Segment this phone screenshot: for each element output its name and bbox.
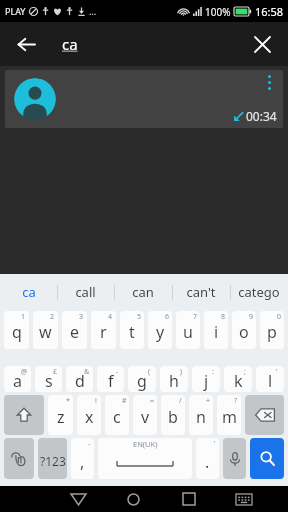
staticText: *	[66, 396, 70, 406]
button[interactable]: -	[97, 366, 124, 392]
staticText: -	[88, 439, 91, 449]
button[interactable]: 5	[120, 311, 144, 349]
staticText: s	[45, 370, 53, 392]
staticText: can't	[186, 283, 216, 301]
staticText: (	[148, 367, 151, 377]
button[interactable]: 7	[176, 311, 200, 349]
staticText: +	[206, 396, 211, 406]
button[interactable]: '	[256, 366, 284, 392]
staticText: call	[75, 283, 96, 301]
staticText: 2	[50, 312, 55, 322]
staticText: k	[234, 370, 243, 392]
staticText: ;	[244, 367, 246, 377]
staticText: w	[39, 321, 52, 343]
button[interactable]: Space	[98, 438, 192, 479]
staticText: 3	[79, 312, 84, 322]
staticText: ca	[62, 34, 78, 54]
button[interactable]: -	[71, 438, 94, 479]
staticText: .	[205, 451, 210, 473]
staticText: =	[150, 396, 155, 406]
staticText: ca	[22, 283, 36, 301]
staticText: l	[268, 370, 273, 392]
button[interactable]: #	[105, 395, 129, 435]
staticText: g	[137, 370, 147, 392]
staticText: 5	[137, 312, 142, 322]
button[interactable]: 8	[204, 311, 228, 349]
staticText: v	[141, 406, 150, 428]
button[interactable]: can	[114, 274, 172, 310]
button[interactable]: Recents	[161, 486, 216, 512]
staticText: )	[180, 367, 183, 377]
button[interactable]: @	[4, 366, 31, 392]
staticText: :	[212, 367, 214, 377]
button[interactable]: '	[196, 438, 219, 479]
button[interactable]: !	[77, 395, 101, 435]
button[interactable]: )	[160, 366, 188, 392]
button[interactable]: /	[161, 395, 185, 435]
button[interactable]: Back	[8, 26, 44, 62]
button[interactable]: 0	[260, 311, 284, 349]
staticText: q	[12, 321, 22, 343]
button[interactable]: :	[192, 366, 220, 392]
button[interactable]: *	[48, 395, 73, 435]
staticText: p	[267, 321, 277, 343]
staticText: m	[222, 406, 237, 428]
button[interactable]: ;	[224, 366, 252, 392]
button[interactable]: 6	[148, 311, 172, 349]
staticText: e	[70, 321, 80, 343]
staticText: …	[89, 5, 97, 17]
button[interactable]: (	[128, 366, 156, 392]
staticText: 7	[193, 312, 198, 322]
staticText: y	[156, 321, 165, 343]
staticText: '	[276, 367, 278, 377]
staticText: #	[122, 396, 127, 406]
button[interactable]: ca	[0, 274, 57, 310]
staticText: 16:58	[255, 4, 284, 19]
staticText: &	[84, 367, 90, 377]
staticText: 100%	[205, 5, 231, 19]
button[interactable]: ?123	[38, 438, 67, 479]
button[interactable]: +	[189, 395, 213, 435]
button[interactable]: catego	[230, 274, 288, 310]
staticText: j	[204, 370, 209, 392]
staticText: f	[108, 370, 114, 392]
button[interactable]: Home	[106, 486, 161, 512]
button[interactable]: 2	[33, 311, 58, 349]
staticText: c	[113, 406, 121, 428]
button[interactable]: Voice input	[223, 438, 246, 479]
button[interactable]: Backspace	[245, 395, 284, 435]
staticText: t	[129, 321, 135, 343]
staticText: '	[214, 439, 216, 449]
button[interactable]: call	[57, 274, 114, 310]
staticText: 6	[165, 312, 170, 322]
staticText: @	[21, 367, 28, 377]
button[interactable]: Back	[51, 486, 106, 512]
staticText: z	[57, 406, 65, 428]
button[interactable]: Kim	[5, 70, 283, 128]
button[interactable]: can't	[172, 274, 230, 310]
button[interactable]: 3	[62, 311, 87, 349]
button[interactable]: £	[35, 366, 62, 392]
staticText: !	[95, 396, 97, 406]
button[interactable]: =	[133, 395, 157, 435]
button[interactable]: Clear search	[244, 26, 280, 62]
staticText: o	[239, 321, 249, 343]
button[interactable]: Switch keyboard	[216, 486, 271, 512]
staticText: PLAY	[5, 5, 26, 17]
button[interactable]: 9	[232, 311, 256, 349]
button[interactable]: ca	[62, 34, 78, 54]
button[interactable]: 4	[91, 311, 116, 349]
staticText: h	[169, 370, 179, 392]
button[interactable]: 1	[4, 311, 29, 349]
button[interactable]: Gesture typing	[4, 438, 34, 479]
button[interactable]: &	[66, 366, 93, 392]
button[interactable]: ?	[217, 395, 241, 435]
staticText: a	[13, 370, 22, 392]
button[interactable]: More options	[261, 73, 277, 91]
staticText: r	[100, 321, 107, 343]
staticText: EN(UK)	[133, 439, 158, 449]
staticText: -	[116, 367, 119, 377]
button[interactable]: Search	[250, 438, 284, 479]
staticText: x	[85, 406, 94, 428]
button[interactable]: Shift	[4, 395, 44, 435]
